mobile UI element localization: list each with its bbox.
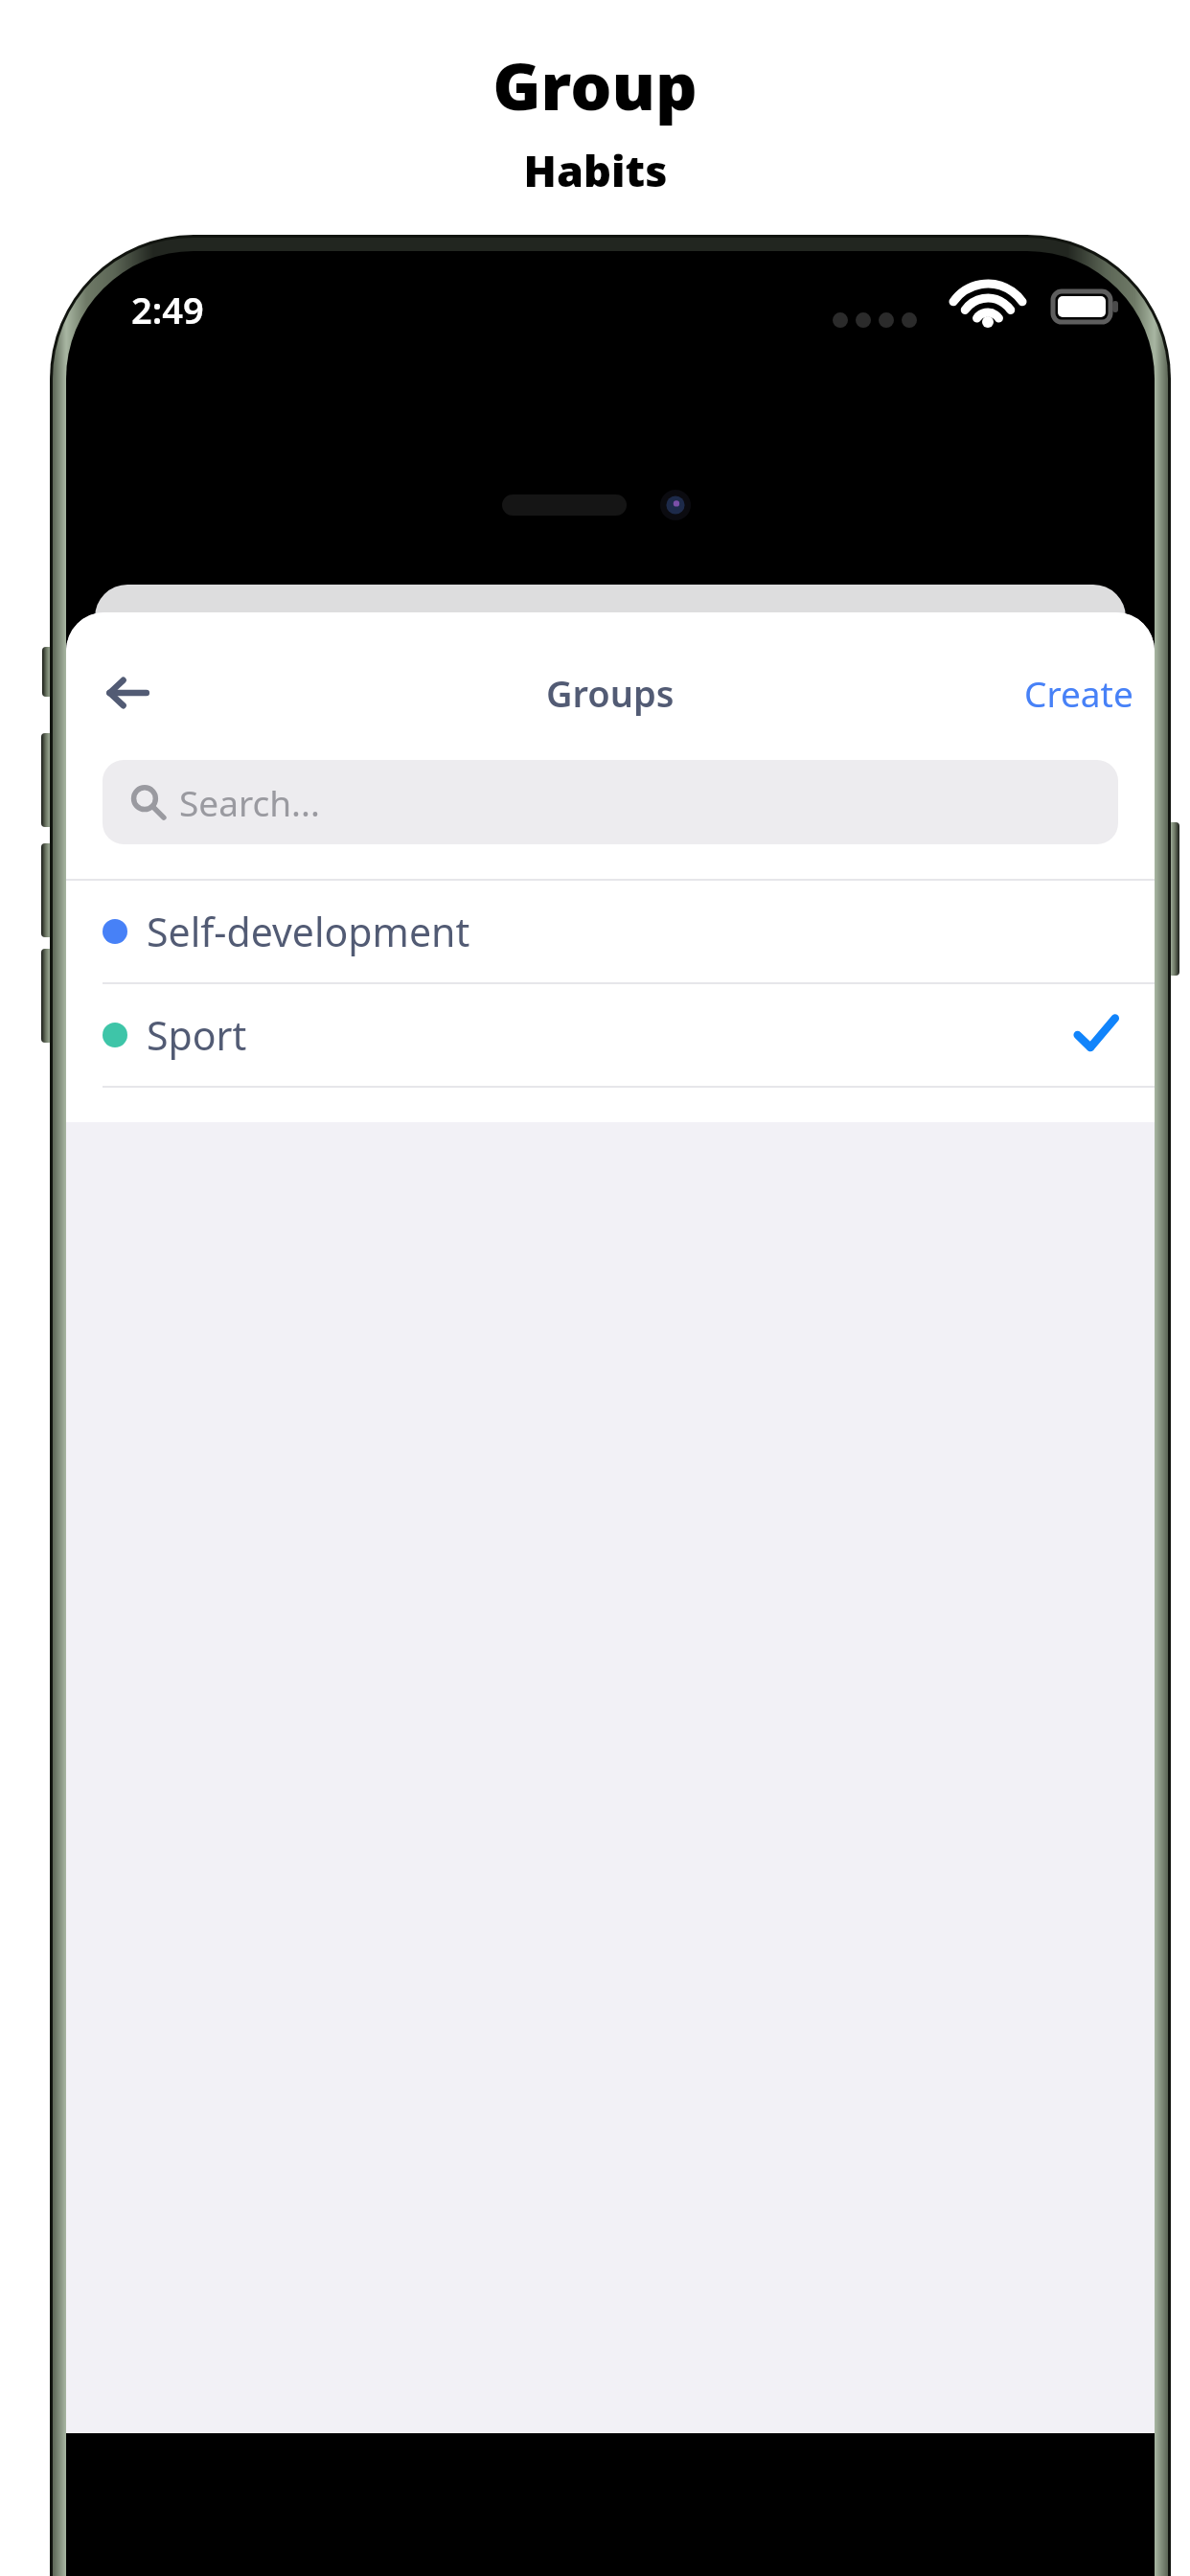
- staticText: Sport: [147, 1008, 247, 1062]
- staticText: Groups: [546, 668, 675, 718]
- staticText: Group: [492, 40, 698, 129]
- staticText: 2:49: [131, 285, 204, 334]
- staticText: Habits: [523, 141, 668, 199]
- staticText: Self-development: [147, 905, 470, 958]
- button[interactable]: Sport: [66, 984, 1155, 1086]
- button[interactable]: Create: [1003, 655, 1155, 730]
- button[interactable]: Back: [87, 653, 168, 733]
- button[interactable]: Search...: [103, 760, 1118, 844]
- staticText: Create: [1024, 669, 1133, 717]
- button[interactable]: Self-development: [66, 881, 1155, 982]
- staticText: Search...: [179, 778, 320, 826]
